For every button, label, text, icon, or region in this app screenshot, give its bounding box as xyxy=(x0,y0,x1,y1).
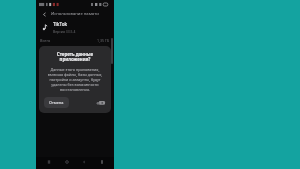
button[interactable]: Логотип xyxy=(96,99,106,106)
staticText: Отмена xyxy=(49,100,64,105)
button[interactable]: Отмена xyxy=(44,97,69,108)
staticText: Стереть данные приложения? xyxy=(44,51,106,63)
button[interactable]: Назад xyxy=(79,157,88,166)
staticText: Данные этого приложения, включая файлы, … xyxy=(44,67,106,92)
button[interactable]: Назад xyxy=(40,10,48,18)
staticText: 1,35 ГБ xyxy=(97,38,110,43)
button[interactable]: Меню xyxy=(44,157,53,166)
button[interactable]: Главная xyxy=(62,157,71,166)
button[interactable]: Ещё xyxy=(97,157,106,166)
button[interactable]: TikTok xyxy=(36,19,114,36)
staticText: Всего xyxy=(40,38,51,43)
staticText: TikTok xyxy=(53,21,68,27)
staticText: Версия 33.5.4 xyxy=(53,29,76,34)
staticText: Использование памяти xyxy=(51,11,99,17)
